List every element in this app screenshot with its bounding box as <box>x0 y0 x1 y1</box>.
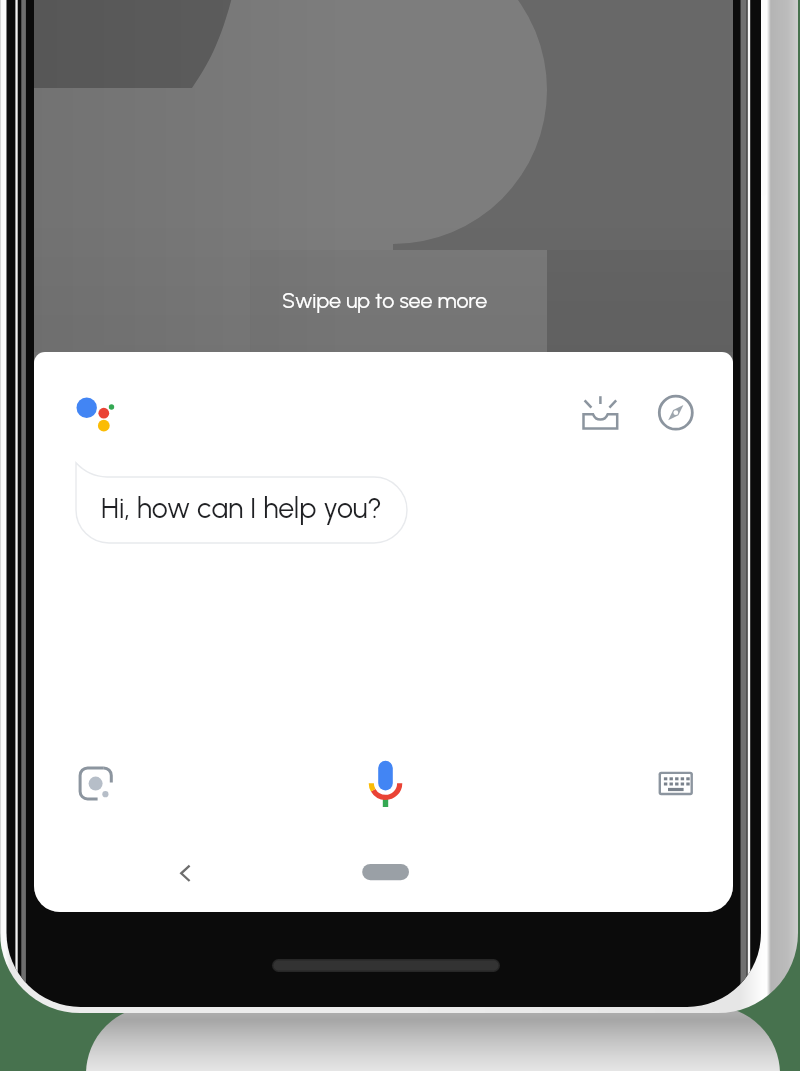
button[interactable]: Updates <box>568 384 634 444</box>
button[interactable]: Explore <box>646 384 706 444</box>
button[interactable]: Voice search <box>356 752 416 816</box>
button[interactable]: Google Lens <box>66 754 126 814</box>
button[interactable]: Back <box>164 852 208 896</box>
staticText: Hi, how can I help you? <box>101 491 382 525</box>
button[interactable]: Home <box>356 856 416 888</box>
button[interactable]: Keyboard <box>646 754 706 814</box>
staticText: Swipe up to see more <box>282 288 488 314</box>
